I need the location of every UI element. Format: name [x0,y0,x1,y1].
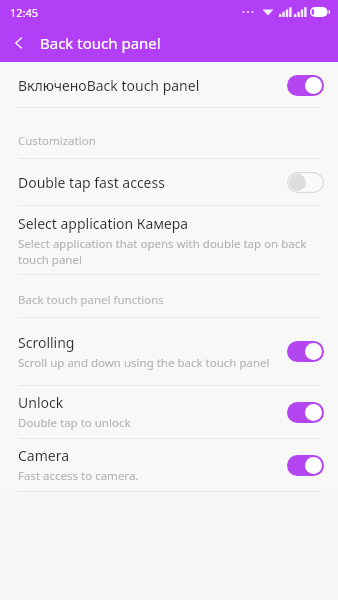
staticText: Scroll up and down using the back touch … [18,355,270,371]
staticText: Camera [18,446,70,465]
staticText: Select application that opens with doubl… [18,236,324,267]
staticText: Back touch panel functions [18,292,164,308]
button[interactable]: Toggle on [287,402,324,423]
button[interactable]: Select application Камера [0,206,338,274]
button[interactable]: ВключеноBack touch panel [0,63,338,107]
button[interactable]: Scrolling [0,318,338,385]
staticText: Double tap to unlock [18,415,131,431]
staticText: 12:45 [10,5,39,20]
button[interactable]: Unlock [0,386,338,438]
staticText: ВключеноBack touch panel [18,76,200,95]
button[interactable]: Toggle on [287,341,324,362]
staticText: Back touch panel [40,33,161,53]
staticText: Fast access to camera. [18,468,139,484]
button[interactable]: Toggle on [287,75,324,96]
button[interactable]: Camera [0,439,338,491]
button[interactable]: Toggle off [287,172,324,193]
button[interactable]: Back [0,24,38,62]
staticText: Customization [18,133,96,149]
button[interactable]: Toggle on [287,455,324,476]
staticText: Scrolling [18,333,75,352]
staticText: Select application Камера [18,214,188,233]
staticText: Double tap fast access [18,173,165,192]
button[interactable]: Double tap fast access [0,159,338,205]
staticText: Unlock [18,393,64,412]
